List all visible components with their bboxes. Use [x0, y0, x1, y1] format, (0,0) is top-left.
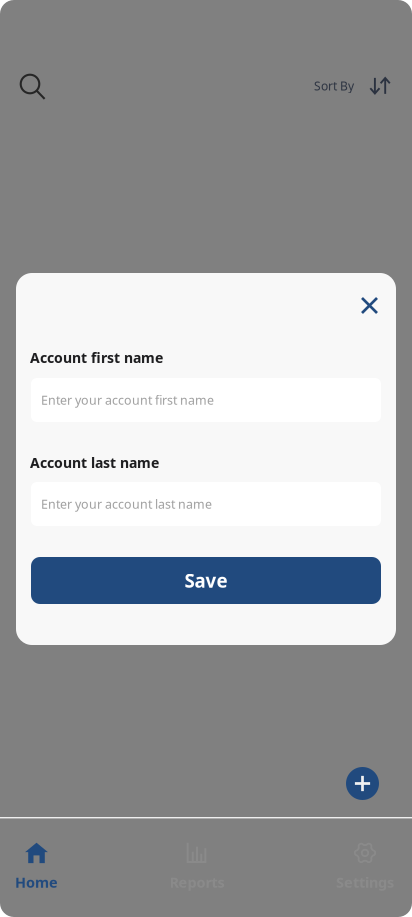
button[interactable]: Search [12, 66, 54, 108]
staticText: Home [15, 872, 58, 892]
staticText: Enter your account first name [41, 392, 214, 408]
button[interactable]: Enter your account first name [31, 378, 381, 422]
staticText: Account first name [30, 348, 163, 367]
button[interactable]: Settings [336, 842, 394, 898]
button[interactable]: Close [352, 288, 387, 323]
staticText: Save [184, 568, 227, 593]
button[interactable]: Home [15, 842, 58, 898]
staticText: Enter your account last name [41, 496, 212, 512]
staticText: Sort By [314, 78, 354, 94]
staticText: Settings [336, 872, 394, 892]
button[interactable]: Save [31, 557, 381, 604]
button[interactable]: Add [346, 767, 379, 800]
button[interactable]: Sort By [306, 69, 398, 102]
staticText: Reports [169, 872, 224, 892]
button[interactable]: Reports [169, 842, 224, 898]
staticText: Account last name [30, 453, 159, 472]
button[interactable]: Enter your account last name [31, 482, 381, 526]
